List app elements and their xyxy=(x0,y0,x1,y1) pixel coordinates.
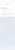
button[interactable]: Home xyxy=(0,46,5,50)
button[interactable] xyxy=(0,21,15,24)
button[interactable] xyxy=(0,24,15,28)
button[interactable] xyxy=(0,28,15,31)
